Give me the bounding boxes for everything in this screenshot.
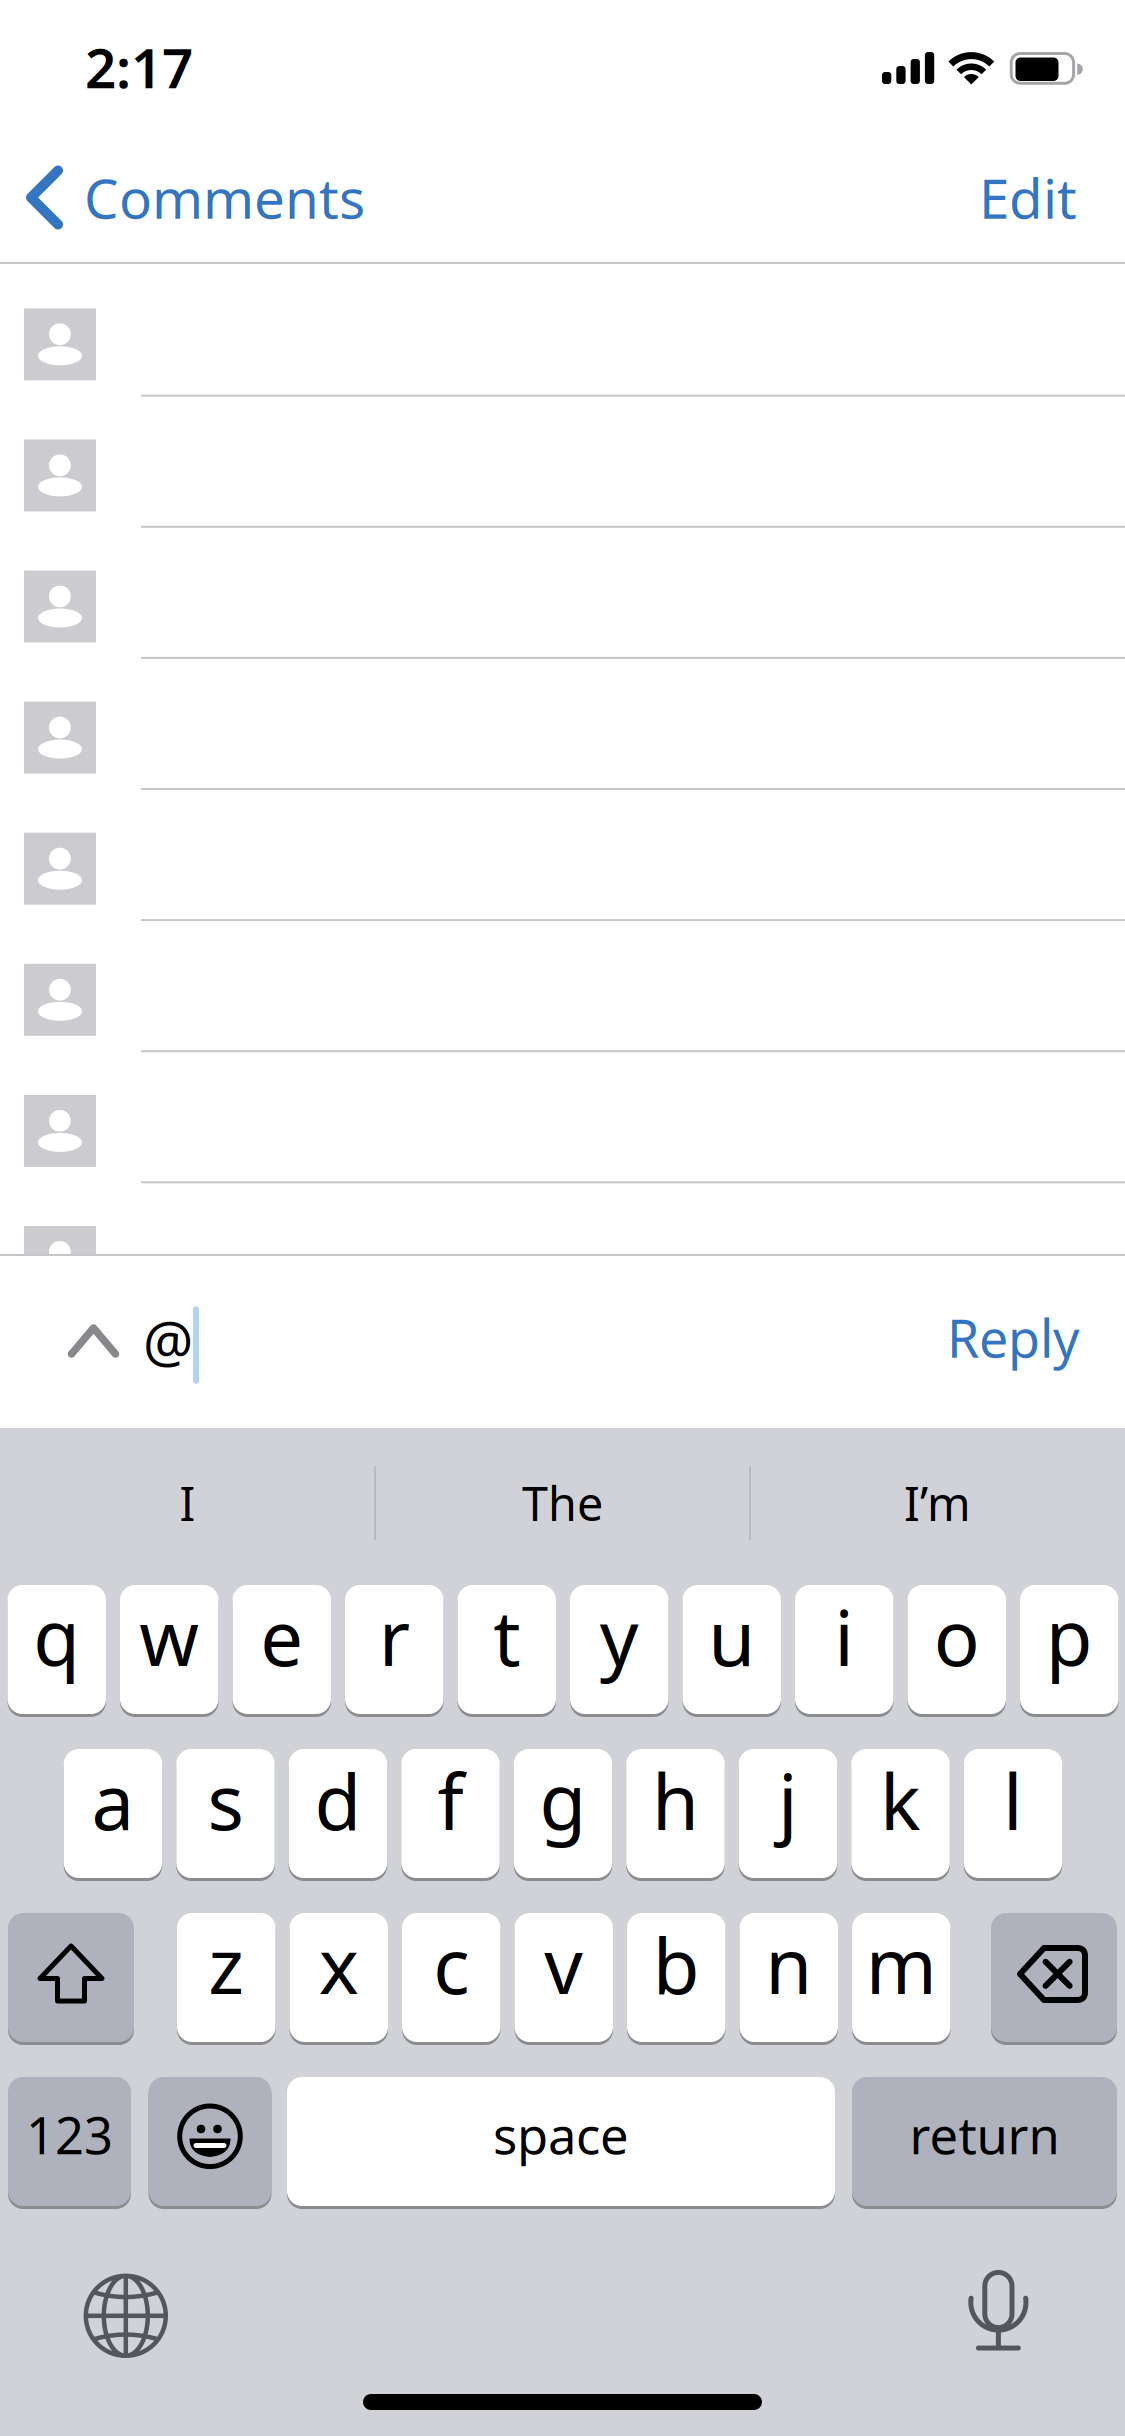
button[interactable]: u bbox=[682, 1585, 781, 1714]
staticText: v bbox=[544, 1914, 583, 2015]
staticText: h bbox=[652, 1750, 699, 1851]
button[interactable]: Emoji bbox=[148, 2077, 271, 2206]
staticText: Edit bbox=[979, 161, 1077, 234]
button[interactable]: g bbox=[514, 1749, 612, 1878]
button[interactable]: o bbox=[907, 1585, 1006, 1714]
button[interactable]: q bbox=[7, 1585, 106, 1714]
button[interactable]: Delete bbox=[991, 1913, 1117, 2042]
button[interactable]: m bbox=[852, 1913, 950, 2042]
button[interactable]: h bbox=[626, 1749, 725, 1878]
button[interactable]: r bbox=[345, 1585, 443, 1714]
staticText: p bbox=[1046, 1586, 1093, 1687]
staticText: a bbox=[91, 1750, 134, 1851]
button[interactable]: The bbox=[377, 1428, 747, 1578]
button[interactable]: Comment 3 bbox=[0, 526, 1125, 657]
staticText: @ bbox=[143, 1304, 193, 1378]
staticText: f bbox=[437, 1750, 463, 1851]
staticText: y bbox=[600, 1586, 639, 1687]
staticText: c bbox=[433, 1914, 469, 2015]
staticText: I’m bbox=[904, 1472, 971, 1534]
staticText: I bbox=[179, 1472, 195, 1534]
staticText: s bbox=[207, 1750, 243, 1851]
button[interactable]: s bbox=[176, 1749, 275, 1878]
button[interactable]: f bbox=[401, 1749, 500, 1878]
staticText: Reply bbox=[947, 1303, 1080, 1372]
button[interactable]: I’m bbox=[752, 1428, 1122, 1578]
staticText: Comments bbox=[84, 161, 365, 234]
button[interactable]: p bbox=[1020, 1585, 1118, 1714]
staticText: space bbox=[493, 2101, 629, 2168]
button[interactable]: Comments bbox=[26, 161, 365, 234]
button[interactable]: Comment 6 bbox=[0, 919, 1125, 1051]
button[interactable]: Expand reply field bbox=[63, 1319, 124, 1363]
button[interactable]: l bbox=[964, 1749, 1062, 1878]
staticText: z bbox=[208, 1914, 244, 2015]
button[interactable]: Comment 7 bbox=[0, 1051, 1125, 1182]
button[interactable]: Reply bbox=[918, 1287, 1108, 1387]
button[interactable]: e bbox=[232, 1585, 331, 1714]
button[interactable]: b bbox=[627, 1913, 725, 2042]
staticText: m bbox=[866, 1914, 937, 2015]
staticText: w bbox=[139, 1586, 199, 1687]
staticText: n bbox=[765, 1914, 812, 2015]
button[interactable]: v bbox=[514, 1913, 613, 2042]
button[interactable]: Comment text field bbox=[143, 1281, 938, 1405]
button[interactable]: c bbox=[402, 1913, 500, 2042]
button[interactable]: return bbox=[852, 2077, 1117, 2206]
staticText: t bbox=[493, 1586, 520, 1687]
button[interactable]: I bbox=[2, 1428, 372, 1578]
staticText: return bbox=[909, 2101, 1059, 2168]
button[interactable]: y bbox=[570, 1585, 668, 1714]
button[interactable]: Dictate bbox=[970, 2270, 1026, 2350]
staticText: q bbox=[33, 1586, 80, 1687]
staticText: 123 bbox=[26, 2101, 113, 2168]
button[interactable]: n bbox=[739, 1913, 838, 2042]
button[interactable]: j bbox=[739, 1749, 837, 1878]
staticText: r bbox=[379, 1586, 410, 1687]
button[interactable]: Next keyboard bbox=[85, 2275, 167, 2357]
staticText: d bbox=[314, 1750, 361, 1851]
button[interactable]: z bbox=[177, 1913, 275, 2042]
button[interactable]: space bbox=[287, 2077, 835, 2206]
button[interactable]: Comment 2 bbox=[0, 395, 1125, 526]
button[interactable]: w bbox=[120, 1585, 218, 1714]
button[interactable]: Comment 8 bbox=[0, 1182, 1125, 1313]
staticText: o bbox=[934, 1586, 980, 1687]
staticText: u bbox=[708, 1586, 755, 1687]
button[interactable]: Comment 1 bbox=[0, 264, 1125, 395]
staticText: k bbox=[880, 1750, 921, 1851]
button[interactable]: k bbox=[851, 1749, 950, 1878]
button[interactable]: Edit bbox=[979, 161, 1077, 234]
staticText: j bbox=[778, 1750, 798, 1851]
button[interactable]: x bbox=[289, 1913, 388, 2042]
button[interactable]: a bbox=[64, 1749, 162, 1878]
staticText: b bbox=[653, 1914, 700, 2015]
button[interactable]: i bbox=[795, 1585, 893, 1714]
button[interactable]: 123 bbox=[8, 2077, 131, 2206]
staticText: g bbox=[539, 1750, 586, 1851]
button[interactable]: d bbox=[289, 1749, 387, 1878]
staticText: The bbox=[522, 1472, 603, 1534]
staticText: i bbox=[834, 1586, 854, 1687]
button[interactable]: Comment 5 bbox=[0, 788, 1125, 919]
staticText: e bbox=[260, 1586, 303, 1687]
staticText: l bbox=[1003, 1750, 1023, 1851]
staticText: 2:17 bbox=[85, 31, 193, 103]
button[interactable]: t bbox=[457, 1585, 556, 1714]
button[interactable]: Comment 4 bbox=[0, 657, 1125, 788]
staticText: x bbox=[319, 1914, 359, 2015]
button[interactable]: Shift bbox=[8, 1913, 134, 2042]
